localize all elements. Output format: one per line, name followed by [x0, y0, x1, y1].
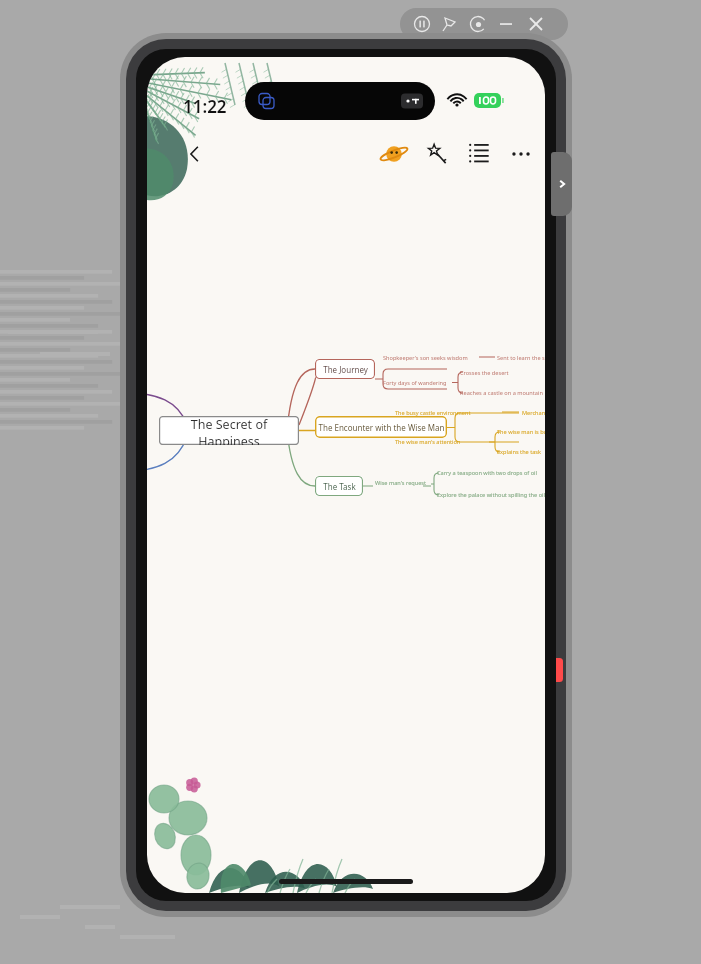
button[interactable]: Explains the task: [497, 448, 542, 456]
button[interactable]: AI assistant: [372, 132, 416, 176]
button[interactable]: The Secret of Happiness: [159, 416, 299, 445]
button[interactable]: Forty days of wandering: [383, 379, 447, 387]
staticText: The wise man's attention: [395, 438, 461, 446]
staticText: Reaches a castle on a mountain: [460, 389, 543, 397]
button[interactable]: The wise man's attention: [395, 438, 461, 446]
button[interactable]: Minimize: [500, 8, 532, 40]
staticText: Merchants, musicians: [522, 409, 545, 417]
staticText: 11:22: [183, 95, 227, 118]
staticText: The wise man is busy: [497, 428, 545, 436]
button[interactable]: Reaches a castle on a mountain: [460, 389, 543, 397]
button[interactable]: Pause: [418, 8, 450, 40]
button[interactable]: More options: [499, 132, 543, 176]
button[interactable]: Shopkeeper's son seeks wisdom: [383, 354, 468, 362]
button[interactable]: Rewind: [473, 8, 505, 40]
button[interactable]: The wise man is busy: [497, 428, 545, 436]
staticText: The Secret of Happiness: [159, 416, 299, 445]
staticText: The Task: [323, 481, 356, 492]
staticText: Explore the palace without spilling the …: [437, 491, 545, 499]
button[interactable]: The Journey: [315, 359, 375, 379]
button[interactable]: The busy castle environment: [395, 409, 471, 417]
staticText: Sent to learn the secret of happiness: [497, 354, 545, 362]
button[interactable]: Explore the palace without spilling the …: [437, 491, 545, 499]
staticText: Shopkeeper's son seeks wisdom: [383, 354, 468, 362]
button[interactable]: Outline: [457, 132, 501, 176]
button[interactable]: The Task: [315, 476, 363, 496]
button[interactable]: Merchants, musicians: [522, 409, 545, 417]
button[interactable]: Carry a teaspoon with two drops of oil: [437, 469, 537, 477]
staticText: Forty days of wandering: [383, 379, 447, 387]
button[interactable]: Back: [173, 132, 217, 176]
button[interactable]: Sent to learn the secret of happiness: [497, 354, 545, 362]
button[interactable]: Expand panel: [551, 152, 572, 216]
staticText: Explains the task: [497, 448, 542, 456]
button[interactable]: Crosses the desert: [460, 369, 509, 377]
staticText: The busy castle environment: [395, 409, 471, 417]
staticText: The Encounter with the Wise Man: [318, 422, 445, 433]
button[interactable]: Wise man's request: [375, 479, 427, 487]
button[interactable]: The Encounter with the Wise Man: [315, 416, 447, 438]
button[interactable]: Magic wand: [415, 132, 459, 176]
button[interactable]: Close: [527, 8, 559, 40]
staticText: Carry a teaspoon with two drops of oil: [437, 469, 537, 477]
staticText: Wise man's request: [375, 479, 427, 487]
staticText: The Journey: [323, 364, 368, 375]
button[interactable]: Pin: [446, 8, 478, 40]
staticText: Crosses the desert: [460, 369, 509, 377]
